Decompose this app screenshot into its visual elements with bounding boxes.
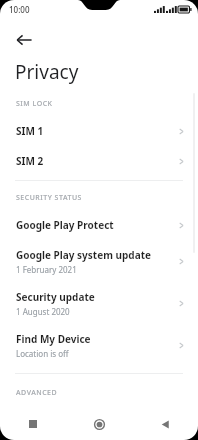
button[interactable]: Back — [6, 22, 42, 58]
staticText: Location is off — [16, 348, 69, 359]
staticText: 1 August 2020 — [16, 306, 70, 317]
staticText: Find My Device — [16, 332, 91, 346]
button[interactable]: Back — [132, 408, 198, 440]
staticText: SIM 1 — [16, 124, 44, 138]
staticText: Google Play Protect — [16, 218, 114, 232]
staticText: SIM LOCK — [16, 99, 53, 109]
staticText: SIM 2 — [16, 154, 44, 168]
staticText: SECURITY STATUS — [16, 193, 82, 203]
staticText: ADVANCED — [16, 388, 58, 398]
staticText: Google Play system update — [16, 248, 151, 262]
staticText: 1 February 2021 — [16, 264, 77, 275]
staticText: 10:00 — [9, 4, 30, 15]
button[interactable]: Security update — [0, 282, 198, 324]
button[interactable]: SIM 2 — [0, 146, 198, 176]
button[interactable]: Google Play Protect — [0, 210, 198, 240]
staticText: Security update — [16, 290, 95, 304]
button[interactable]: Home — [66, 408, 132, 440]
button[interactable]: Recent apps — [0, 408, 66, 440]
button[interactable]: Google Play system update — [0, 240, 198, 282]
button[interactable]: Find My Device — [0, 324, 198, 366]
staticText: Privacy — [15, 59, 79, 85]
button[interactable]: SIM 1 — [0, 116, 198, 146]
